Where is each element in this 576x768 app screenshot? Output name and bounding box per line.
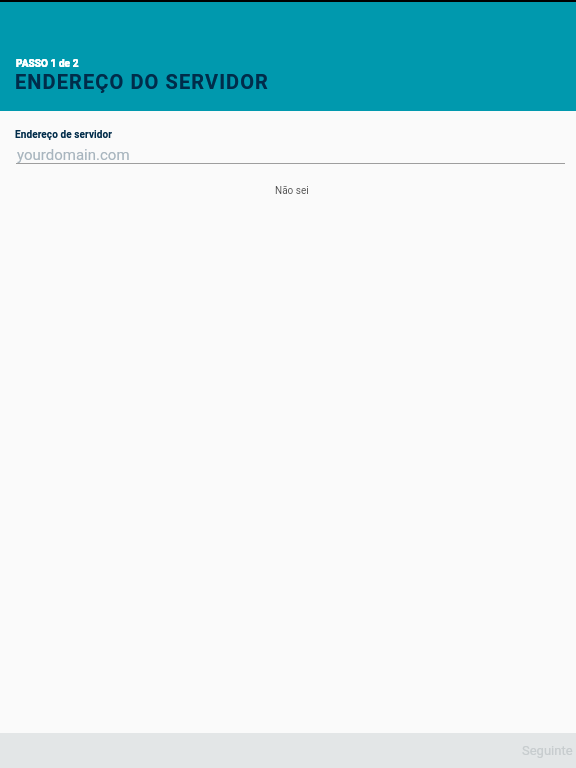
- staticText: ENDEREÇO DO SERVIDOR: [15, 70, 269, 93]
- staticText: Endereço de servidor: [15, 129, 113, 141]
- staticText: Seguinte: [522, 743, 573, 758]
- button[interactable]: Não sei: [265, 183, 319, 199]
- button[interactable]: Seguinte: [506, 735, 576, 766]
- staticText: Endereço de servidor: [15, 129, 113, 141]
- button[interactable]: Endereço de servidor: [0, 111, 576, 166]
- staticText: PASSO 1 de 2: [16, 58, 79, 70]
- staticText: yourdomain.com: [17, 146, 130, 164]
- staticText: PASSO 1 de 2: [16, 58, 79, 70]
- staticText: ENDEREÇO DO SERVIDOR: [15, 70, 269, 93]
